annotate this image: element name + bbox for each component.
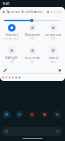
staticText: Off bbox=[10, 60, 14, 63]
button[interactable]: App bbox=[16, 111, 23, 118]
staticText: Flashlight bbox=[5, 56, 18, 59]
staticText: Off bbox=[51, 37, 55, 40]
button[interactable] bbox=[1, 127, 62, 136]
staticText: Off bbox=[30, 37, 34, 40]
staticText: Home Wi-Fi bbox=[4, 37, 19, 40]
button[interactable]: Edit tiles bbox=[3, 68, 7, 72]
staticText: On bbox=[30, 60, 34, 63]
button[interactable]: Flashlight bbox=[1, 47, 22, 63]
button[interactable]: App bbox=[28, 111, 36, 118]
staticText: Do Not Dist bbox=[45, 33, 61, 37]
button[interactable]: Bluetooth bbox=[22, 24, 43, 41]
staticText: Tap to see all notifications bbox=[6, 10, 42, 14]
staticText: Auto-rotate bbox=[24, 56, 40, 59]
button[interactable]: Do Not Dist bbox=[43, 24, 64, 41]
button[interactable]: Battery bbox=[43, 47, 64, 63]
button[interactable]: App bbox=[3, 111, 10, 118]
staticText: Battery bbox=[49, 56, 58, 59]
staticText: Bluetooth bbox=[25, 33, 40, 37]
button[interactable]: App bbox=[54, 111, 61, 118]
button[interactable]: App bbox=[41, 111, 48, 118]
button[interactable]: Settings bbox=[59, 69, 61, 72]
staticText: Internet bbox=[6, 33, 18, 37]
button[interactable]: Internet bbox=[1, 24, 22, 41]
button[interactable]: Auto-rotate bbox=[22, 47, 43, 63]
staticText: Saver bbox=[50, 60, 56, 63]
staticText: Settings bbox=[50, 10, 61, 14]
staticText: 9:41 bbox=[2, 1, 9, 6]
